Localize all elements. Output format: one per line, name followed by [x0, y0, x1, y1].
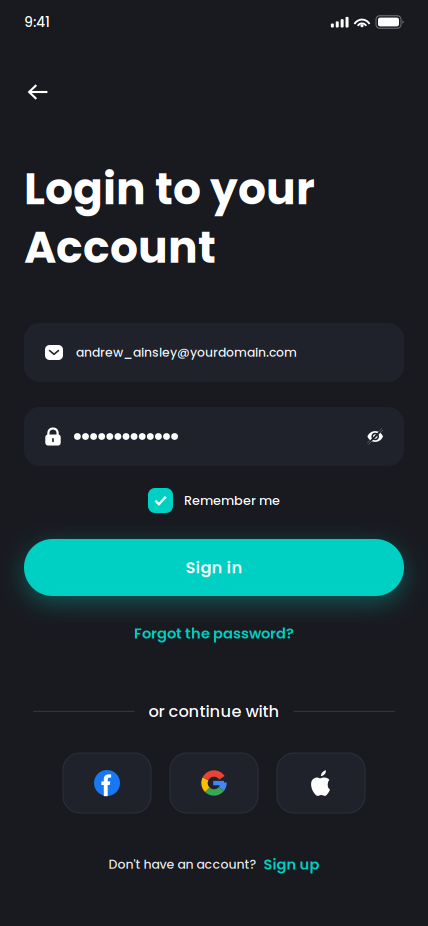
staticText: Login to your — [24, 158, 315, 220]
button[interactable]: Continue with Apple — [277, 753, 365, 813]
button[interactable]: Sign up — [263, 854, 319, 874]
staticText: Don't have an account? — [108, 855, 256, 873]
button[interactable]: Forgot the password? — [134, 618, 294, 648]
button[interactable]: Continue with Facebook — [63, 753, 151, 813]
button[interactable]: Back — [16, 70, 60, 114]
staticText: Remember me — [184, 491, 280, 509]
staticText: Sign in — [185, 556, 242, 579]
button[interactable]: Remember me — [148, 488, 280, 513]
staticText: 9:41 — [24, 12, 50, 32]
staticText: andrew_ainsley@yourdomain.com — [76, 344, 297, 361]
staticText: Sign up — [263, 854, 319, 874]
staticText: or continue with — [148, 700, 279, 723]
button[interactable]: Continue with Google — [170, 753, 258, 813]
staticText: Account — [24, 217, 216, 278]
button[interactable]: Show password — [366, 428, 384, 445]
staticText: Forgot the password? — [134, 623, 294, 643]
button[interactable]: Sign in — [24, 539, 404, 596]
